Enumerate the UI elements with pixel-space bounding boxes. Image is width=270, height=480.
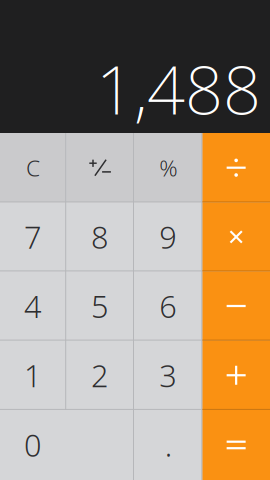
staticText: 3 (159, 355, 177, 396)
button[interactable]: 2 (66, 341, 134, 410)
staticText: 2 (91, 355, 109, 396)
staticText: 1 (24, 355, 42, 396)
staticText: . (165, 425, 172, 465)
button[interactable]: Subtract (202, 271, 270, 341)
staticText: 5 (91, 286, 109, 326)
button[interactable]: Equals (202, 410, 270, 480)
staticText: C (26, 153, 40, 183)
button[interactable]: % (134, 133, 202, 202)
button[interactable]: C (0, 133, 66, 202)
button[interactable]: Divide (202, 133, 270, 202)
button[interactable]: 5 (66, 271, 134, 341)
staticText: 4 (24, 286, 42, 326)
staticText: % (159, 153, 177, 183)
button[interactable]: 1 (0, 341, 66, 410)
button[interactable]: Add (202, 341, 270, 410)
button[interactable]: 8 (66, 202, 134, 271)
staticText: 1,488 (96, 44, 261, 133)
button[interactable]: 4 (0, 271, 66, 341)
button[interactable]: 3 (134, 341, 202, 410)
staticText: 0 (24, 425, 42, 465)
button[interactable]: 9 (134, 202, 202, 271)
button[interactable]: 6 (134, 271, 202, 341)
button[interactable]: Plus minus (66, 133, 134, 202)
button[interactable]: 0 (0, 410, 134, 480)
button[interactable]: . (134, 410, 202, 480)
staticText: 9 (159, 216, 177, 257)
staticText: 8 (91, 216, 109, 257)
staticText: 7 (24, 216, 42, 257)
staticText: 6 (159, 286, 177, 326)
button[interactable]: Multiply (202, 202, 270, 271)
button[interactable]: 7 (0, 202, 66, 271)
